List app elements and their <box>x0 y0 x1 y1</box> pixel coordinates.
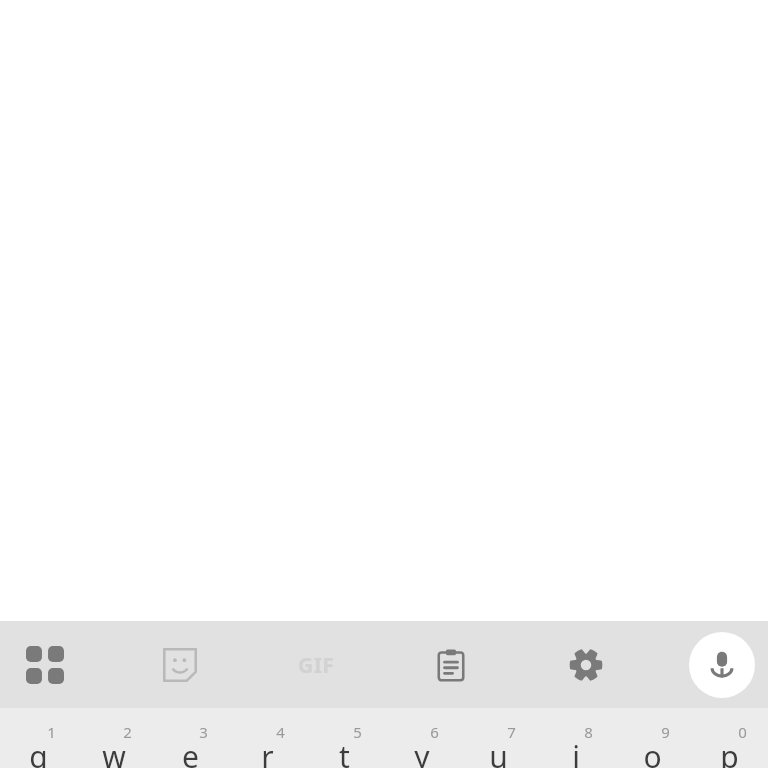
staticText: 5 <box>353 722 362 742</box>
staticText: 3 <box>199 722 208 742</box>
staticText: r <box>261 736 274 768</box>
staticText: o <box>643 736 662 768</box>
staticText: i <box>572 736 580 768</box>
button[interactable]: 6 <box>383 708 460 768</box>
button[interactable]: Settings <box>552 631 620 699</box>
staticText: y <box>414 736 430 768</box>
button[interactable]: 2 <box>76 708 152 768</box>
staticText: 2 <box>123 722 132 742</box>
button[interactable]: 8 <box>537 708 614 768</box>
staticText: 8 <box>584 722 593 742</box>
staticText: e <box>182 736 199 768</box>
button[interactable]: 5 <box>306 708 383 768</box>
button[interactable]: 4 <box>229 708 306 768</box>
button[interactable]: 1 <box>0 708 76 768</box>
staticText: p <box>720 736 739 768</box>
button[interactable]: GIF <box>282 631 350 699</box>
staticText: 6 <box>430 722 439 742</box>
staticText: 0 <box>738 722 747 742</box>
button[interactable]: 0 <box>691 708 768 768</box>
staticText: u <box>489 736 508 768</box>
button[interactable]: Apps <box>11 631 79 699</box>
button[interactable]: 9 <box>614 708 691 768</box>
button[interactable]: Stickers <box>146 631 214 699</box>
staticText: w <box>102 736 126 768</box>
staticText: GIF <box>298 651 335 680</box>
staticText: q <box>29 736 48 768</box>
staticText: 7 <box>507 722 516 742</box>
staticText: t <box>339 736 350 768</box>
staticText: 4 <box>276 722 285 742</box>
button[interactable]: Clipboard <box>417 631 485 699</box>
button[interactable]: 3 <box>152 708 229 768</box>
button[interactable]: Voice input <box>688 631 756 699</box>
staticText: 9 <box>661 722 670 742</box>
staticText: 1 <box>47 722 56 742</box>
button[interactable]: 7 <box>460 708 537 768</box>
